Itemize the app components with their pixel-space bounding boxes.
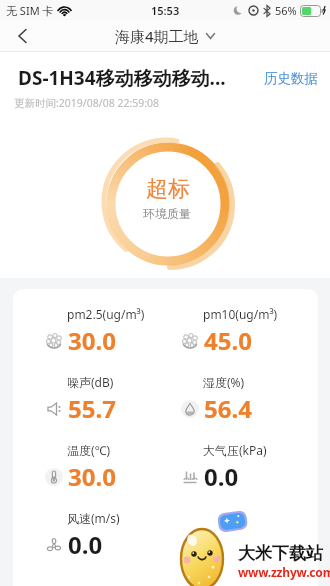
staticText: pm2.5(ug/m³) <box>67 306 145 322</box>
staticText: 历史数据 <box>264 70 318 87</box>
staticText: 噪声(dB) <box>67 374 114 390</box>
staticText: 0.0 <box>68 528 103 561</box>
button[interactable]: 风速(m/s) <box>45 510 120 561</box>
button[interactable]: 温度(℃) <box>45 442 116 493</box>
staticText: pm10(ug/m³) <box>203 306 278 322</box>
button[interactable]: pm2.5(ug/m³) <box>45 306 145 357</box>
button[interactable]: pm10(ug/m³) <box>181 306 278 357</box>
staticText: 55.7 <box>68 392 116 425</box>
staticText: 环境质量 <box>143 206 191 221</box>
staticText: 30.0 <box>68 324 116 357</box>
staticText: 56% <box>275 3 297 18</box>
staticText: DS-1H34移动移动移动... <box>18 65 264 91</box>
staticText: 45.0 <box>204 324 252 357</box>
button[interactable] <box>8 22 36 50</box>
staticText: 30.0 <box>68 460 116 493</box>
button[interactable]: 海康4期工地 <box>115 26 215 46</box>
staticText: 海康4期工地 <box>115 26 199 46</box>
staticText: 超标 <box>146 175 190 203</box>
staticText: 15:53 <box>151 3 180 18</box>
staticText: 大气压(kPa) <box>203 442 267 458</box>
staticText: 温度(℃) <box>67 442 111 458</box>
staticText: 风速(m/s) <box>67 510 120 526</box>
staticText: 更新时间:2019/08/08 22:59:08 <box>14 96 160 110</box>
button[interactable]: 湿度(%) <box>181 374 252 425</box>
button[interactable]: 噪声(dB) <box>45 374 116 425</box>
button[interactable]: 历史数据 <box>264 70 318 87</box>
staticText: 无 SIM 卡 <box>6 3 54 18</box>
staticText: 湿度(%) <box>203 374 245 390</box>
button[interactable]: 大气压(kPa) <box>181 442 267 493</box>
staticText: 大米下载站 <box>238 543 323 564</box>
staticText: 0.0 <box>204 460 239 493</box>
staticText: www.zzhyw.com <box>238 564 330 580</box>
staticText: 56.4 <box>204 392 252 425</box>
